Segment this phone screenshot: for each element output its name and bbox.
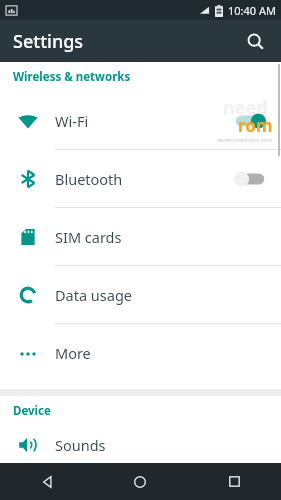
staticText: SIM cards [55, 227, 281, 247]
button[interactable]: Sounds [0, 426, 281, 463]
button[interactable]: Back [0, 463, 93, 500]
staticText: 10:40 AM [228, 3, 276, 18]
staticText: More [55, 343, 281, 363]
button[interactable]: Data usage [0, 266, 281, 323]
button[interactable]: Bluetooth [0, 150, 281, 207]
staticText: www.needrom.com [217, 136, 273, 144]
button[interactable]: Search [237, 23, 273, 59]
button[interactable]: On [233, 111, 267, 131]
staticText: Sounds [55, 435, 281, 455]
staticText: Wireless & networks [13, 69, 131, 85]
staticText: Bluetooth [55, 169, 233, 189]
staticText: Settings [13, 29, 84, 54]
button[interactable]: Wi-Fi [0, 92, 281, 149]
staticText: Data usage [55, 285, 281, 305]
button[interactable]: More [0, 324, 281, 381]
staticText: Device [13, 403, 51, 419]
staticText: rom [238, 114, 273, 137]
button[interactable]: Off [233, 169, 267, 189]
staticText: need [223, 95, 268, 120]
button[interactable]: SIM cards [0, 208, 281, 265]
staticText: Wi-Fi [55, 111, 233, 131]
button[interactable]: Recent apps [187, 463, 281, 500]
button[interactable]: Home [93, 463, 187, 500]
